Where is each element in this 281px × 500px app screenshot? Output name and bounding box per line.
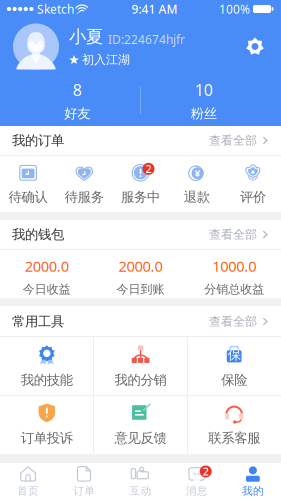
- staticText: 退款: [184, 189, 210, 205]
- staticText: 首页: [17, 484, 39, 497]
- staticText: 我的技能: [21, 372, 73, 388]
- button[interactable]: 订单投诉: [0, 402, 94, 446]
- staticText: 保险: [221, 372, 247, 388]
- staticText: 8: [73, 79, 82, 100]
- button[interactable]: 我的分销: [94, 344, 187, 388]
- button[interactable]: 意见反馈: [94, 402, 187, 446]
- staticText: 查看全部: [209, 314, 257, 329]
- button[interactable]: 订单: [56, 465, 112, 497]
- staticText: 粉丝: [191, 105, 217, 122]
- staticText: 9:41 AM: [131, 1, 177, 17]
- staticText: 互动: [129, 484, 151, 497]
- button[interactable]: 评价: [225, 163, 281, 205]
- staticText: 联系客服: [208, 430, 260, 446]
- staticText: 我的分销: [114, 372, 166, 388]
- staticText: 10: [195, 79, 213, 100]
- button[interactable]: 查看全部: [209, 314, 269, 329]
- button[interactable]: 退款: [169, 163, 225, 205]
- button[interactable]: 2: [112, 163, 169, 205]
- staticText: 订单: [73, 484, 95, 497]
- staticText: 查看全部: [209, 227, 257, 242]
- button[interactable]: 待确认: [0, 163, 56, 205]
- staticText: 好友: [64, 105, 90, 122]
- staticText: 2: [203, 464, 209, 479]
- staticText: 100%: [219, 1, 250, 17]
- staticText: 小夏: [69, 26, 103, 47]
- staticText: 我的订单: [12, 132, 64, 149]
- button[interactable]: 10: [140, 79, 267, 122]
- staticText: 保: [228, 347, 241, 363]
- button[interactable]: 我的技能: [0, 344, 94, 388]
- staticText: 评价: [240, 189, 266, 205]
- staticText: 2000.0: [118, 256, 162, 276]
- staticText: 常用工具: [12, 313, 64, 330]
- button[interactable]: 保: [187, 344, 281, 388]
- button[interactable]: 我的: [225, 465, 281, 497]
- button[interactable]: 待服务: [56, 163, 112, 205]
- staticText: 消息: [186, 484, 208, 497]
- staticText: 1000.0: [212, 256, 256, 276]
- button[interactable]: 查看全部: [209, 133, 269, 148]
- staticText: 我的钱包: [12, 226, 64, 243]
- button[interactable]: 设置: [242, 33, 268, 59]
- button[interactable]: 联系客服: [187, 402, 281, 446]
- button[interactable]: 2: [169, 465, 225, 497]
- button[interactable]: 8: [14, 79, 140, 122]
- staticText: 意见反馈: [114, 430, 166, 446]
- button[interactable]: 互动: [112, 465, 169, 497]
- staticText: 查看全部: [209, 133, 257, 148]
- staticText: 我的: [242, 484, 264, 497]
- staticText: ID:224674hjfr: [108, 31, 185, 47]
- button[interactable]: 查看全部: [209, 227, 269, 242]
- staticText: 2: [145, 162, 151, 176]
- staticText: Sketch: [37, 1, 74, 17]
- button[interactable]: 首页: [0, 465, 56, 497]
- staticText: 今日到账: [116, 282, 164, 297]
- staticText: 服务中: [121, 189, 160, 205]
- staticText: 分销总收益: [204, 282, 264, 297]
- staticText: 2000.0: [25, 256, 69, 276]
- staticText: 待确认: [9, 189, 48, 205]
- staticText: 待服务: [65, 189, 104, 205]
- staticText: 初入江湖: [82, 52, 130, 67]
- staticText: 今日收益: [23, 282, 71, 297]
- staticText: 订单投诉: [21, 430, 73, 446]
